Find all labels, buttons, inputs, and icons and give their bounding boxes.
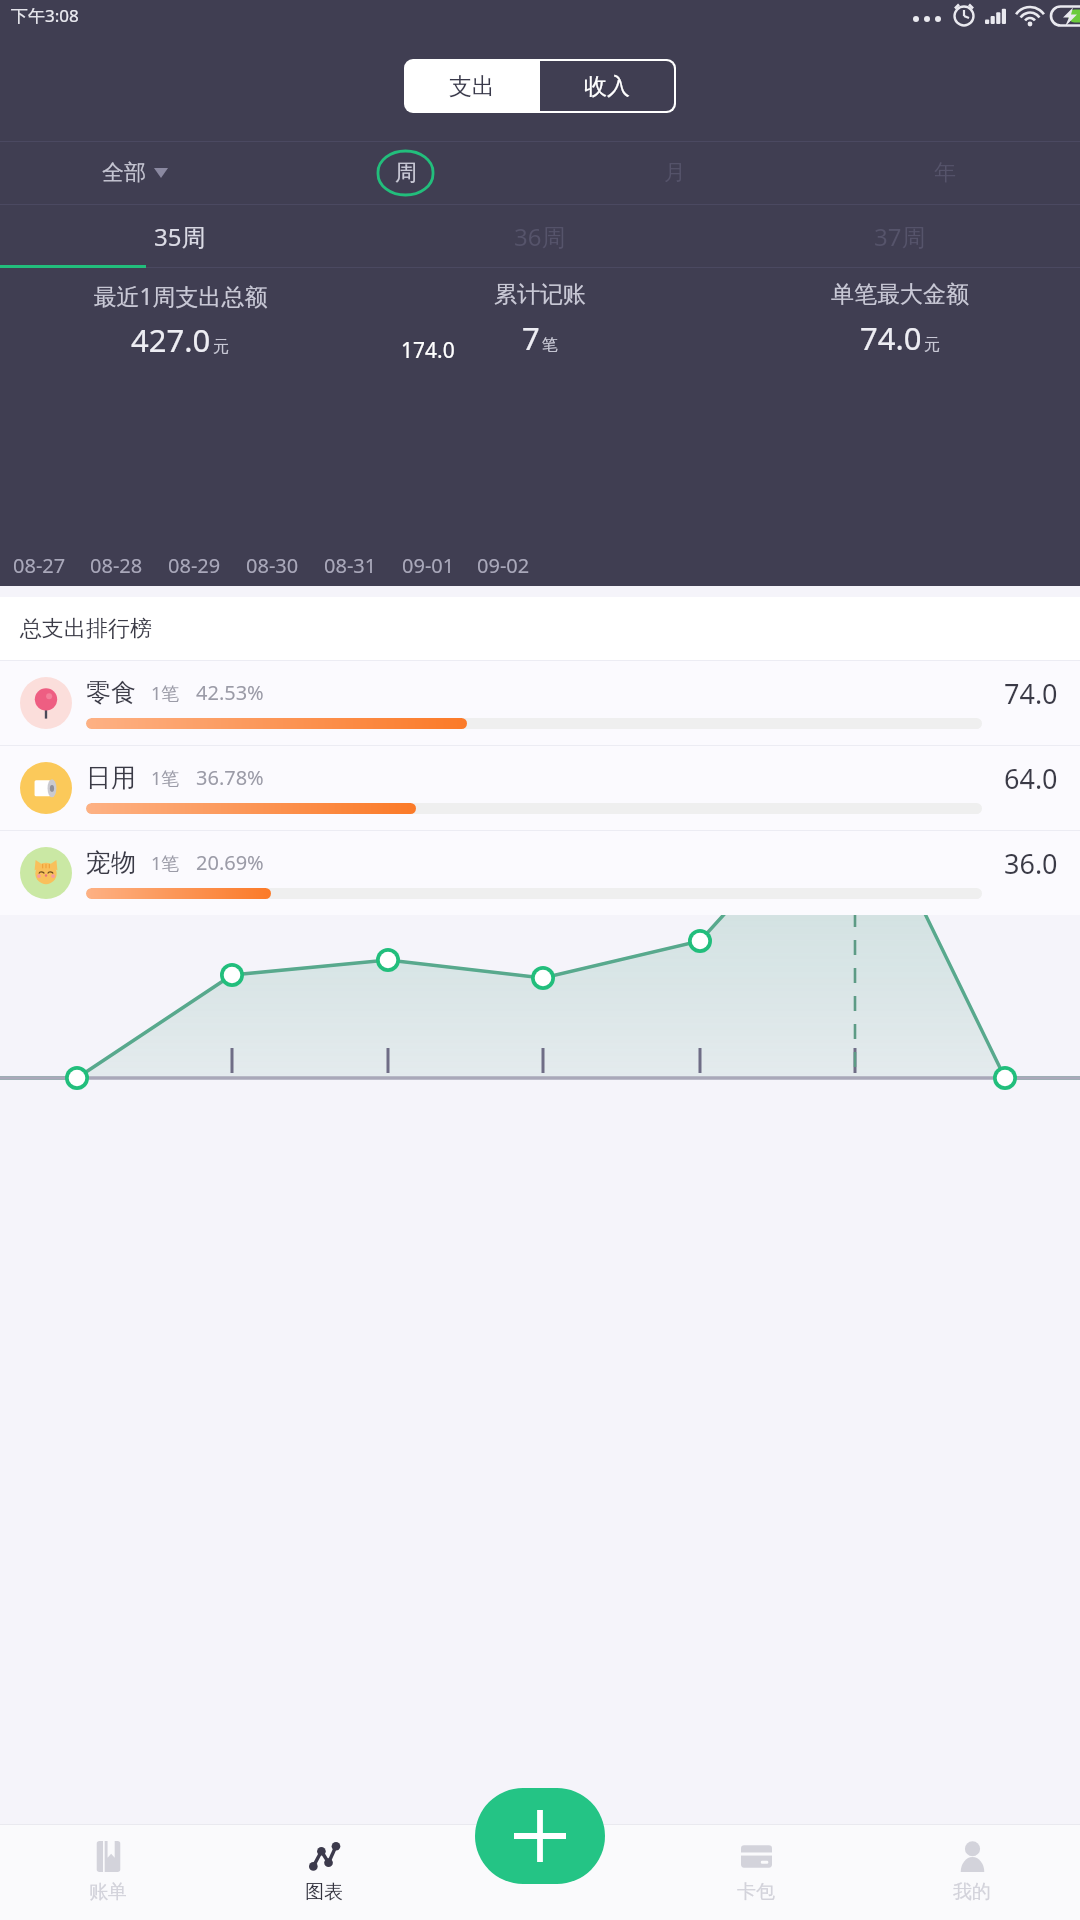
- staticText: 64.0: [1004, 760, 1058, 797]
- staticText: 零食: [86, 677, 136, 708]
- staticText: 卡包: [737, 1880, 775, 1904]
- staticText: 宠物: [86, 847, 136, 878]
- staticText: 08-29: [168, 552, 221, 579]
- staticText: 元: [924, 335, 940, 355]
- staticText: 支出: [449, 72, 495, 101]
- staticText: 元: [213, 337, 229, 357]
- staticText: 08-31: [324, 552, 377, 579]
- staticText: 74.0: [1004, 675, 1058, 712]
- button[interactable]: 36周: [360, 204, 720, 268]
- button[interactable]: 我的: [864, 1824, 1080, 1920]
- staticText: 74.0: [860, 317, 922, 359]
- staticText: 1笔: [151, 851, 180, 876]
- staticText: 37周: [874, 220, 926, 253]
- staticText: 20.69%: [196, 849, 264, 876]
- staticText: 图表: [305, 1880, 343, 1904]
- staticText: 42.53%: [196, 679, 264, 706]
- staticText: 笔: [542, 335, 558, 355]
- staticText: 427.0: [131, 319, 211, 361]
- button[interactable]: 卡包: [648, 1824, 864, 1920]
- staticText: 日用: [86, 762, 136, 793]
- staticText: 全部: [102, 159, 146, 187]
- staticText: 收入: [584, 72, 630, 101]
- staticText: 总支出排行榜: [20, 615, 152, 643]
- button[interactable]: 周: [270, 141, 540, 204]
- button[interactable]: 37周: [720, 204, 1080, 268]
- staticText: 09-02: [477, 552, 530, 579]
- button[interactable]: 图表: [216, 1824, 432, 1920]
- staticText: 周: [395, 159, 417, 187]
- staticText: 月: [664, 159, 686, 187]
- button[interactable]: 添加记账: [475, 1788, 605, 1884]
- staticText: 36周: [514, 220, 566, 253]
- staticText: 累计记账: [494, 280, 586, 309]
- staticText: 36.78%: [196, 764, 264, 791]
- button[interactable]: 支出: [404, 59, 540, 113]
- staticText: 账单: [89, 1880, 127, 1904]
- button[interactable]: 35周: [0, 204, 360, 268]
- staticText: 35周: [154, 220, 206, 253]
- staticText: 36.0: [1004, 845, 1058, 882]
- button[interactable]: 日用: [0, 746, 1080, 830]
- staticText: 1笔: [151, 681, 180, 706]
- staticText: 下午3:08: [11, 4, 79, 27]
- button[interactable]: 宠物: [0, 831, 1080, 915]
- staticText: 单笔最大金额: [831, 280, 969, 309]
- button[interactable]: 零食: [0, 661, 1080, 745]
- staticText: 我的: [953, 1880, 991, 1904]
- staticText: 08-27: [13, 552, 66, 579]
- staticText: 09-01: [402, 552, 455, 579]
- staticText: 08-30: [246, 552, 299, 579]
- staticText: 7: [522, 317, 540, 359]
- button[interactable]: 账单: [0, 1824, 216, 1920]
- staticText: 年: [934, 159, 956, 187]
- staticText: 08-28: [90, 552, 143, 579]
- staticText: 1笔: [151, 766, 180, 791]
- staticText: 174.0: [401, 336, 455, 362]
- staticText: 最近1周支出总额: [93, 280, 268, 311]
- button[interactable]: 收入: [540, 61, 674, 111]
- button[interactable]: 全部: [0, 141, 270, 204]
